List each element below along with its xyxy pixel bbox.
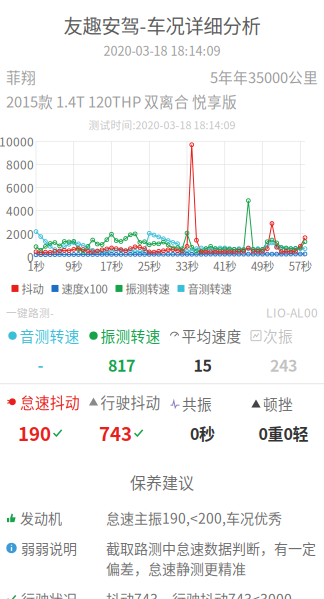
staticText: 友趣安驾-车况详细分析 [63,11,260,39]
staticText: 5年年35000公里 [210,66,318,87]
staticText: 保养建议 [130,470,194,494]
staticText: 行驶抖动 [100,391,160,412]
staticText: 振测转速 [125,280,169,297]
staticText: 33秒 [175,258,198,274]
button[interactable]: 音测转速 [0,325,81,376]
staticText: 4000 [6,202,34,219]
staticText: 57秒 [289,258,312,274]
staticText: 2000 [6,225,34,242]
staticText: 截取路测中怠速数据判断，有一定偏差，怠速静测更精准 [106,538,316,578]
staticText: 共振 [182,393,212,414]
staticText: - [37,353,43,376]
staticText: 2020-03-18 18:14:09 [103,41,220,59]
staticText: 743 [99,419,132,446]
button[interactable]: 振测转速 [81,325,162,376]
staticText: 弱弱说明 [21,538,77,558]
staticText: 1秒 [27,258,44,274]
staticText: 菲翔 [6,66,36,87]
button[interactable]: 行驶抖动 [81,391,162,446]
staticText: 6000 [6,179,34,196]
staticText: LIO-AL00 [266,304,318,321]
button[interactable]: 怠速抖动 [0,391,81,446]
staticText: 10000 [0,133,34,150]
staticText: 速度x100 [61,280,107,297]
staticText: 0重0轻 [258,421,308,444]
staticText: 一键路测- [6,305,54,320]
staticText: 25秒 [138,258,161,274]
staticText: 抖动743，行驶抖动743<3000，正常 [106,588,306,599]
button[interactable]: 次振 [243,325,324,376]
staticText: 9秒 [65,258,82,274]
staticText: 17秒 [100,258,123,274]
staticText: 顿挫 [263,393,293,414]
staticText: 8000 [6,156,34,173]
staticText: 0秒 [190,421,215,444]
staticText: 2015款 1.4T 120THP 双离合 悦享版 [6,91,237,112]
staticText: 0 [27,248,34,265]
staticText: 振测转速 [100,325,160,346]
staticText: 49秒 [251,258,274,274]
staticText: 平均速度 [181,325,241,346]
staticText: 行驶状况 [21,588,77,599]
staticText: 怠速主振190,<200,车况优秀 [106,508,282,528]
staticText: 15 [193,353,211,376]
staticText: 测试时间:2020-03-18 18:14:09 [88,117,235,132]
staticText: 41秒 [213,258,236,274]
button[interactable]: 共振 [162,393,243,444]
staticText: 音测转速 [187,280,231,297]
staticText: 次振 [263,325,293,346]
staticText: 怠速抖动 [20,391,80,412]
staticText: 243 [270,353,297,376]
staticText: 817 [108,353,135,376]
staticText: 190 [18,419,51,446]
staticText: 发动机 [20,508,62,528]
button[interactable]: 平均速度 [162,325,243,376]
staticText: 抖动 [21,280,43,297]
staticText: 音测转速 [19,325,79,346]
button[interactable]: 顿挫 [243,393,324,444]
